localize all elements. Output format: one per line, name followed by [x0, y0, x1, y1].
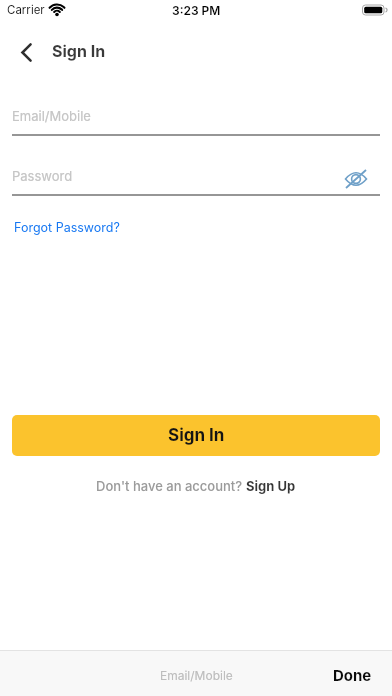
staticText: Forgot Password? [14, 220, 120, 235]
staticText: Sign In [168, 425, 225, 446]
staticText: Carrier [7, 3, 45, 17]
button[interactable]: Password [12, 164, 380, 188]
button[interactable]: Done [333, 666, 372, 684]
button[interactable] [342, 166, 370, 191]
button[interactable]: Forgot Password? [14, 217, 120, 237]
button[interactable] [14, 36, 38, 68]
button[interactable]: Email/Mobile [12, 104, 380, 128]
staticText: 3:23 PM [172, 3, 221, 18]
staticText: Email/Mobile [12, 108, 91, 124]
button[interactable]: Sign In [12, 415, 380, 456]
staticText: Sign Up [246, 478, 296, 494]
staticText: Done [333, 666, 372, 684]
staticText: Sign In [52, 41, 106, 60]
staticText: Password [12, 168, 73, 184]
button[interactable]: Sign Up [246, 478, 296, 494]
staticText: Email/Mobile [160, 668, 233, 683]
staticText: Don't have an account? [96, 478, 246, 494]
